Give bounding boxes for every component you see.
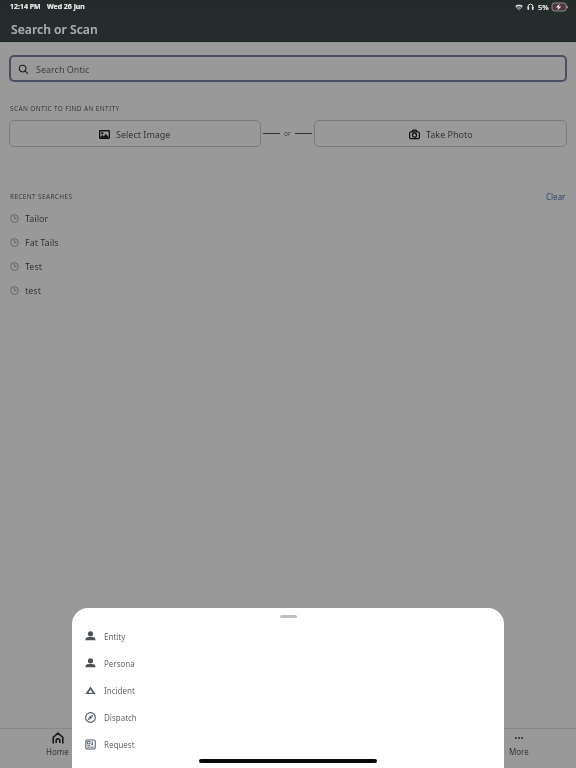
staticText: RECENT SEARCHES — [10, 192, 73, 201]
staticText: test — [25, 284, 41, 296]
staticText: Entity — [104, 631, 126, 642]
button[interactable]: Incident — [72, 677, 504, 704]
staticText: More — [509, 746, 529, 757]
button[interactable]: Home — [0, 729, 115, 759]
button[interactable]: Test — [0, 254, 576, 278]
staticText: Clear — [546, 191, 566, 202]
button[interactable]: Fat Tails — [0, 230, 576, 254]
staticText: Incident — [104, 685, 135, 696]
staticText: Request — [104, 739, 135, 750]
staticText: 5% — [538, 2, 549, 12]
button[interactable]: Entity — [72, 623, 504, 650]
button[interactable]: Take Photo — [314, 120, 567, 147]
staticText: Tailor — [25, 212, 49, 224]
staticText: Home — [46, 746, 69, 757]
button[interactable]: Select Image — [9, 120, 261, 147]
staticText: Persona — [104, 658, 135, 669]
staticText: Test — [25, 260, 43, 272]
button[interactable]: Persona — [72, 650, 504, 677]
staticText: Take Photo — [426, 128, 473, 140]
staticText: Fat Tails — [25, 236, 59, 248]
staticText: or — [284, 129, 291, 138]
button[interactable]: Clear — [544, 189, 568, 204]
staticText: Search or Scan — [11, 21, 98, 38]
button[interactable]: Request — [72, 731, 504, 758]
staticText: 12:14 PM — [10, 2, 41, 12]
button[interactable]: test — [0, 278, 576, 302]
button[interactable]: Search Ontic — [9, 55, 567, 82]
staticText: Wed 26 Jun — [47, 2, 85, 12]
button[interactable]: Dispatch — [72, 704, 504, 731]
staticText: Dispatch — [104, 712, 137, 723]
staticText: Search Ontic — [36, 63, 90, 75]
staticText: Select Image — [116, 128, 171, 140]
button[interactable]: More — [461, 729, 576, 759]
button[interactable]: Tailor — [0, 206, 576, 230]
staticText: SCAN ONTIC TO FIND AN ENTITY — [10, 104, 120, 113]
